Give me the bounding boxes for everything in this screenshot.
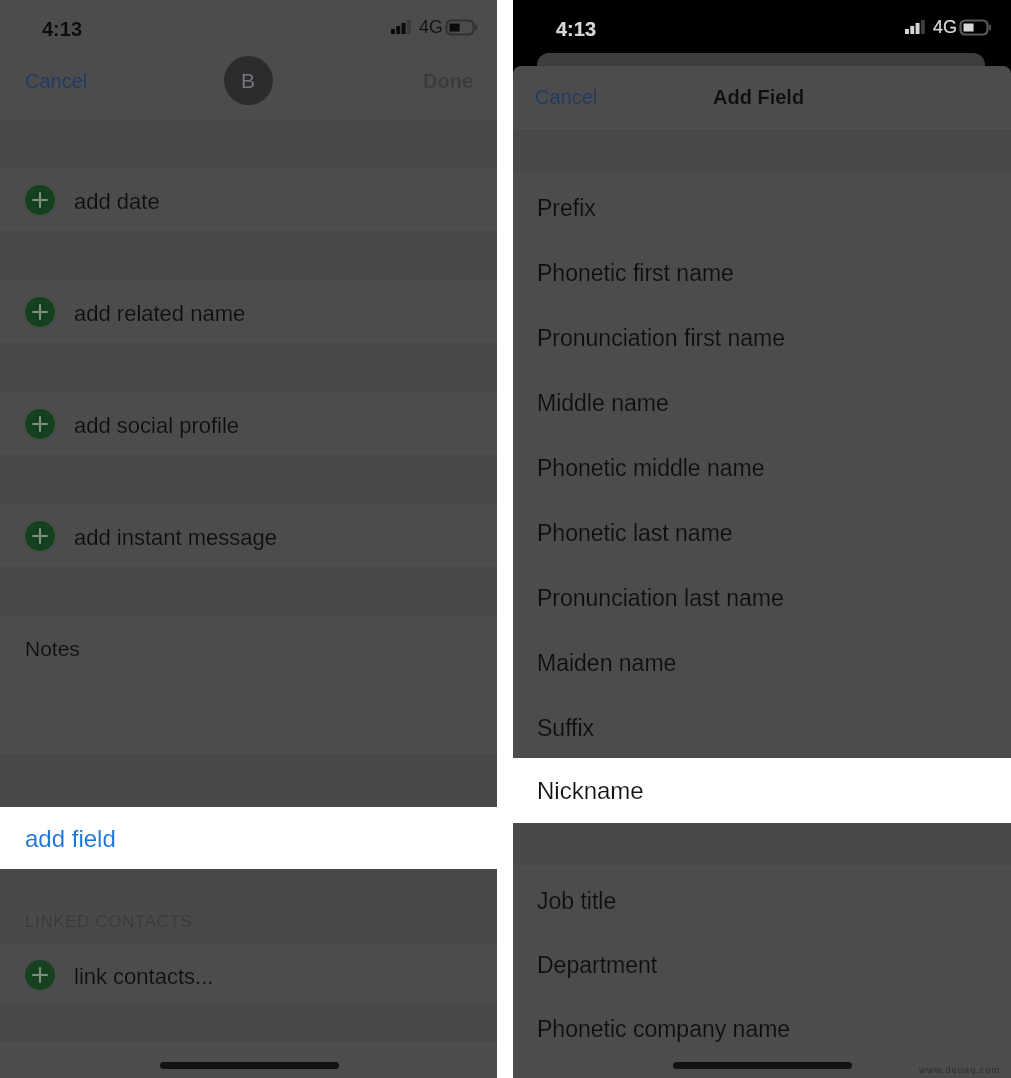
staticText: LINKED CONTACTS xyxy=(25,912,193,931)
button[interactable]: Job title xyxy=(513,867,1011,930)
button[interactable]: Pronunciation last name xyxy=(513,563,1011,628)
staticText: link contacts... xyxy=(74,964,214,989)
button[interactable]: add related name xyxy=(0,282,497,341)
staticText: Nickname xyxy=(537,777,644,804)
staticText: Pronunciation first name xyxy=(537,325,786,351)
button[interactable]: Phonetic middle name xyxy=(513,433,1011,498)
staticText: Middle name xyxy=(537,390,669,416)
staticText: Phonetic company name xyxy=(537,1016,791,1042)
button[interactable]: Done xyxy=(423,70,473,92)
staticText: add field xyxy=(25,825,116,852)
staticText: 4G xyxy=(933,17,958,37)
staticText: add related name xyxy=(74,301,246,326)
button[interactable]: link contacts... xyxy=(0,946,497,1003)
button[interactable]: add instant message xyxy=(0,506,497,565)
staticText: add date xyxy=(74,189,160,214)
button[interactable]: Prefix xyxy=(513,173,1011,238)
button[interactable]: Department xyxy=(513,930,1011,995)
button[interactable]: Phonetic last name xyxy=(513,498,1011,563)
button[interactable]: add field xyxy=(0,807,497,869)
button[interactable]: Suffix xyxy=(513,693,1011,758)
staticText: Cancel xyxy=(25,70,88,92)
staticText: 4G xyxy=(419,17,444,37)
staticText: 4:13 xyxy=(556,18,597,40)
button[interactable]: Nickname xyxy=(505,758,1011,823)
staticText: Pronunciation last name xyxy=(537,585,784,611)
button[interactable]: Middle name xyxy=(513,368,1011,433)
staticText: Cancel xyxy=(535,86,598,108)
staticText: Phonetic middle name xyxy=(537,455,765,481)
staticText: 4:13 xyxy=(42,18,83,40)
button[interactable]: Maiden name xyxy=(513,628,1011,693)
button[interactable]: add date xyxy=(0,170,497,229)
staticText: Phonetic first name xyxy=(537,260,734,286)
staticText: Suffix xyxy=(537,715,595,741)
staticText: Department xyxy=(537,952,658,978)
staticText: Done xyxy=(423,70,473,92)
staticText: www.deuaq.com xyxy=(919,1064,1001,1075)
staticText: Notes xyxy=(25,637,80,660)
staticText: add social profile xyxy=(74,413,240,438)
button[interactable]: Phonetic company name xyxy=(513,995,1011,1058)
button[interactable]: Notes xyxy=(0,618,497,753)
staticText: B xyxy=(241,69,256,92)
button[interactable]: Pronunciation first name xyxy=(513,303,1011,368)
button[interactable]: add social profile xyxy=(0,394,497,453)
staticText: Job title xyxy=(537,888,617,914)
staticText: Prefix xyxy=(537,195,596,221)
button[interactable]: Contact photo xyxy=(224,56,273,105)
staticText: Maiden name xyxy=(537,650,677,676)
button[interactable]: Cancel xyxy=(25,70,88,92)
button[interactable]: Cancel xyxy=(535,86,598,108)
button[interactable]: Phonetic first name xyxy=(513,238,1011,303)
staticText: Add Field xyxy=(713,86,805,108)
staticText: add instant message xyxy=(74,525,278,550)
staticText: Phonetic last name xyxy=(537,520,733,546)
